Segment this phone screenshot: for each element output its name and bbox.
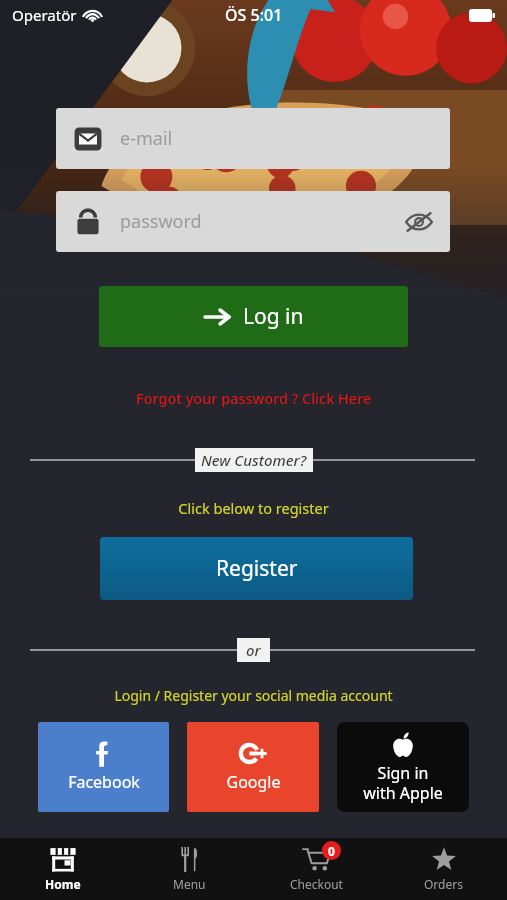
staticText: Log in <box>243 302 304 331</box>
button[interactable]: G+ <box>187 722 319 812</box>
staticText: ÖS 5:01 <box>225 4 283 26</box>
staticText: Sign in with Apple <box>363 762 443 803</box>
button[interactable]: e-mail <box>56 108 450 169</box>
button[interactable]: Register <box>100 537 413 600</box>
staticText: Google <box>226 771 281 793</box>
button[interactable]: password <box>56 191 450 252</box>
staticText: e-mail <box>120 126 173 151</box>
button[interactable]: Apple <box>337 722 469 812</box>
staticText: 0 <box>328 843 335 859</box>
staticText: or <box>246 640 261 660</box>
staticText: Operatör <box>12 5 77 25</box>
staticText: password <box>120 209 202 234</box>
staticText: Facebook <box>68 771 140 793</box>
button[interactable]: Log in <box>99 286 408 347</box>
button[interactable]: f <box>38 722 169 812</box>
button[interactable]: Forgot your password ? Click Here <box>0 388 507 408</box>
staticText: Forgot your password ? Click Here <box>136 388 372 408</box>
staticText: Orders <box>424 876 463 892</box>
staticText: Login / Register your social media accou… <box>0 686 507 705</box>
staticText: Checkout <box>290 876 343 892</box>
staticText: Menu <box>173 876 206 892</box>
staticText: Home <box>45 876 81 892</box>
button[interactable]: Home <box>0 838 126 900</box>
staticText: New Customer? <box>201 450 307 470</box>
button[interactable]: Menu <box>126 838 253 900</box>
staticText: Click below to register <box>0 498 507 518</box>
button[interactable]: Orders <box>380 838 507 900</box>
button[interactable]: 0 <box>253 838 380 900</box>
other: Show password <box>404 211 434 233</box>
staticText: Register <box>216 554 298 583</box>
